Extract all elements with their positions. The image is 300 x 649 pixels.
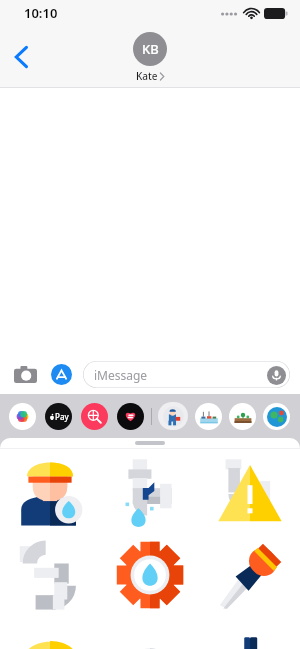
button[interactable]: Sticker 6 <box>200 533 300 617</box>
button[interactable]: Sticker 5 <box>100 533 200 617</box>
button[interactable]: Sticker pack <box>195 403 222 430</box>
button[interactable]: Apple Pay <box>45 403 72 430</box>
button[interactable]: Sticker 2 <box>100 449 200 533</box>
button[interactable]: Sticker 4 <box>0 533 100 617</box>
button[interactable]: Sticker 9 <box>200 617 300 649</box>
button[interactable]: App Store <box>46 359 76 389</box>
button[interactable]: Sticker 7 <box>0 617 100 649</box>
button[interactable]: Sticker 3 <box>200 449 300 533</box>
staticText: iMessage <box>94 367 148 383</box>
button[interactable]: iMessage <box>83 361 290 388</box>
staticText: Pay <box>55 411 69 422</box>
button[interactable]: KB <box>133 32 167 83</box>
staticText: 10:10 <box>24 4 58 22</box>
staticText: KB <box>142 40 159 58</box>
button[interactable]: Back <box>0 26 42 88</box>
staticText: Kate <box>136 69 158 83</box>
button[interactable]: Sticker 1 <box>0 449 100 533</box>
button[interactable]: Digital Touch <box>117 403 144 430</box>
button[interactable]: Photos <box>9 403 36 430</box>
button[interactable]: Sticker pack <box>229 403 256 430</box>
button[interactable]: Image search <box>81 403 108 430</box>
button[interactable]: Camera <box>10 359 40 389</box>
button[interactable]: Sticker pack <box>263 403 290 430</box>
button[interactable]: Plumber stickers <box>158 402 188 430</box>
